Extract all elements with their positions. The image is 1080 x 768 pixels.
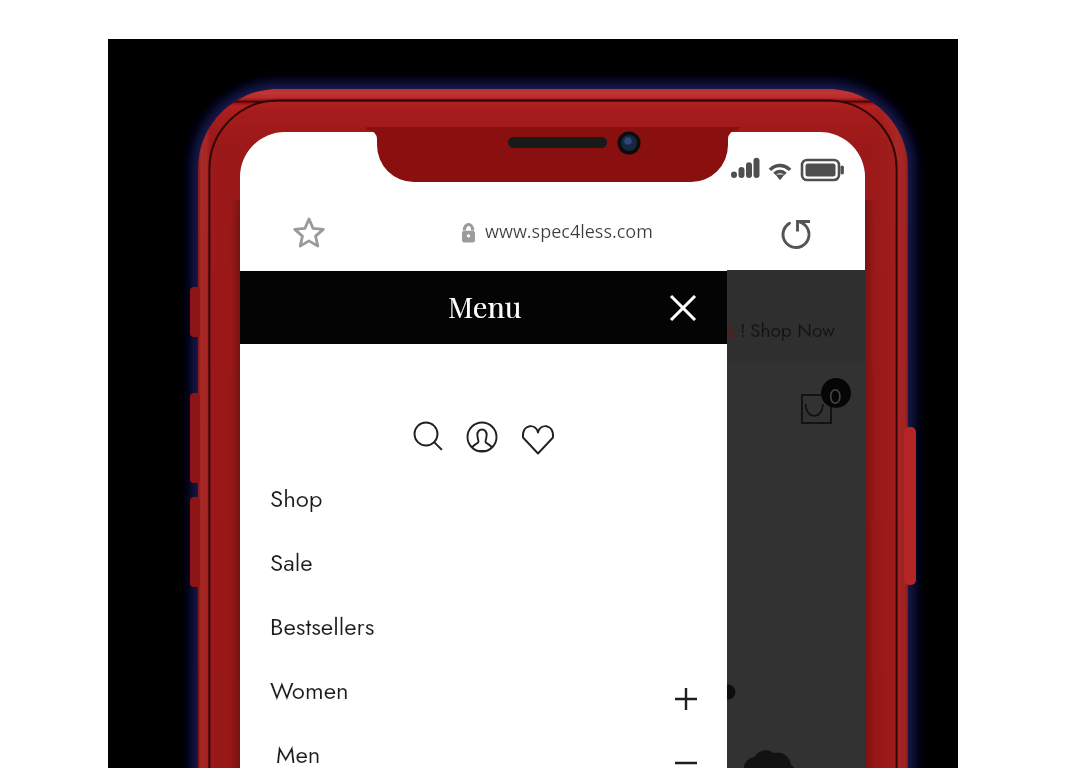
button[interactable]: Bookmark: [293, 217, 325, 249]
staticText: 0: [829, 382, 842, 412]
staticText: Shop Now: [750, 317, 836, 344]
button[interactable]: Close menu: [660, 285, 706, 331]
staticText: Bestsellers: [270, 609, 375, 644]
button[interactable]: Search: [412, 420, 446, 454]
staticText: !: [740, 317, 746, 344]
button[interactable]: Account: [465, 420, 499, 454]
staticText: s.: [727, 317, 741, 344]
staticText: Shop: [270, 481, 323, 516]
staticText: Men: [276, 737, 321, 768]
button[interactable]: Wishlist: [522, 420, 556, 454]
button[interactable]: Men: [240, 724, 727, 768]
staticText: www.spec4less.com: [485, 219, 653, 244]
button[interactable]: Women: [240, 660, 727, 724]
button[interactable]: Reload page: [781, 218, 811, 248]
button[interactable]: Shop: [240, 468, 727, 532]
button[interactable]: Bestsellers: [240, 596, 727, 660]
staticText: Menu: [448, 287, 522, 326]
button[interactable]: Sale: [240, 532, 727, 596]
staticText: Sale: [270, 545, 313, 580]
staticText: Women: [270, 673, 349, 708]
